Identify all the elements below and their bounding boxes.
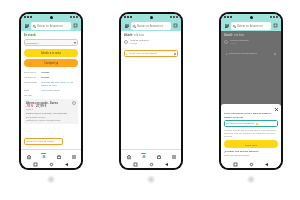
staticText: 29,99 €	[26, 108, 33, 111]
staticText: Envío desde Amazon	[26, 116, 46, 119]
staticText: Ahorra con usado - Bueno	[26, 101, 58, 104]
button[interactable]: Scan	[173, 23, 178, 28]
button[interactable]: Select list	[224, 40, 228, 44]
staticText: +	[126, 52, 128, 56]
button[interactable]: Select	[72, 101, 76, 105]
staticText: ¿Celebras una ocasión especial?	[224, 150, 259, 153]
button[interactable]: +	[226, 50, 276, 57]
staticText: -10 %	[26, 104, 34, 108]
button[interactable]: Home	[21, 150, 36, 161]
staticText: a la lista	[134, 33, 144, 37]
staticText: Lista de Compras	[230, 39, 249, 42]
staticText: Privada	[230, 42, 238, 45]
button[interactable]: Select list	[124, 40, 128, 44]
staticText: a la lista	[234, 33, 244, 37]
button[interactable]: Menu	[24, 23, 30, 29]
staticText: Crear otra Lista de deseos	[229, 52, 258, 55]
staticText: Mis regalos de cumpleaños	[226, 122, 255, 125]
staticText: Buscar en Amazon.es	[137, 24, 164, 28]
button[interactable]: Añadir a la Lista de deseos	[26, 138, 61, 145]
button[interactable]: Cart	[51, 150, 66, 161]
button[interactable]: Crear lista	[224, 140, 278, 148]
staticText: Se puede devolver hasta el 31 de febrero…	[41, 81, 78, 87]
button[interactable]: +	[126, 50, 176, 57]
staticText: Añadir a la Lista de deseos	[26, 140, 55, 143]
staticText: Vendido por	[24, 76, 37, 79]
staticText: Añadir	[224, 33, 233, 37]
button[interactable]: Menu	[224, 23, 230, 29]
staticText: Crear lista	[245, 143, 257, 146]
button[interactable]: Cart	[151, 150, 166, 161]
staticText: Amazon	[41, 76, 78, 79]
staticText: Añadir a la cesta	[41, 51, 61, 55]
staticText: Cantidad: 1	[26, 41, 40, 44]
staticText: Crear una nueva Lista o Idea de regalos	[224, 111, 271, 114]
button[interactable]: Scan	[273, 23, 278, 28]
staticText: 27,99 €	[36, 104, 47, 108]
staticText: Crear otra Lista de deseos	[129, 52, 158, 55]
staticText: Devoluciones	[24, 81, 38, 84]
staticText: Buscar en Amazon.es	[237, 24, 264, 28]
staticText: Nombre de la lista	[224, 116, 244, 119]
button[interactable]: Buscar en Amazon.es	[33, 22, 69, 30]
button[interactable]: Home	[121, 150, 136, 161]
staticText: Lista de Compras	[130, 39, 149, 42]
staticText: Ver más	[24, 94, 33, 97]
button[interactable]: Comprar ya	[24, 59, 78, 67]
staticText: Vendido por Amazon Segunda mano	[26, 119, 61, 122]
button[interactable]: Account	[36, 150, 51, 161]
staticText: Amazon	[41, 71, 78, 74]
staticText: Entrega GRATIS el sábado, 7 de diciembre	[26, 112, 67, 115]
staticText: Crear una Idea de regalos	[224, 154, 250, 157]
button[interactable]: Account	[136, 150, 151, 161]
button[interactable]: Buscar en Amazon.es	[233, 22, 269, 30]
staticText: Transacción segura	[41, 89, 78, 92]
staticText: Comprar ya	[44, 61, 59, 65]
button[interactable]: Cantidad: 1	[26, 39, 76, 46]
staticText: Envío desde	[24, 71, 36, 74]
button[interactable]: Menu	[166, 150, 181, 161]
staticText: Privada	[130, 42, 138, 45]
button[interactable]: Menu	[66, 150, 81, 161]
button[interactable]: Menu	[124, 23, 130, 29]
staticText: Pago	[24, 89, 29, 92]
staticText: En stock	[24, 33, 36, 37]
button[interactable]: Buscar en Amazon.es	[133, 22, 169, 30]
button[interactable]: Añadir a la cesta	[24, 49, 78, 57]
staticText: +	[226, 52, 228, 56]
staticText: Una lista privada solo es visible para t…	[224, 129, 278, 138]
button[interactable]: Close	[274, 107, 278, 111]
staticText: Añadir	[124, 33, 133, 37]
staticText: Buscar en Amazon.es	[37, 24, 64, 28]
button[interactable]: Mis regalos de cumpleaños	[226, 120, 276, 127]
button[interactable]: Scan	[73, 23, 78, 28]
